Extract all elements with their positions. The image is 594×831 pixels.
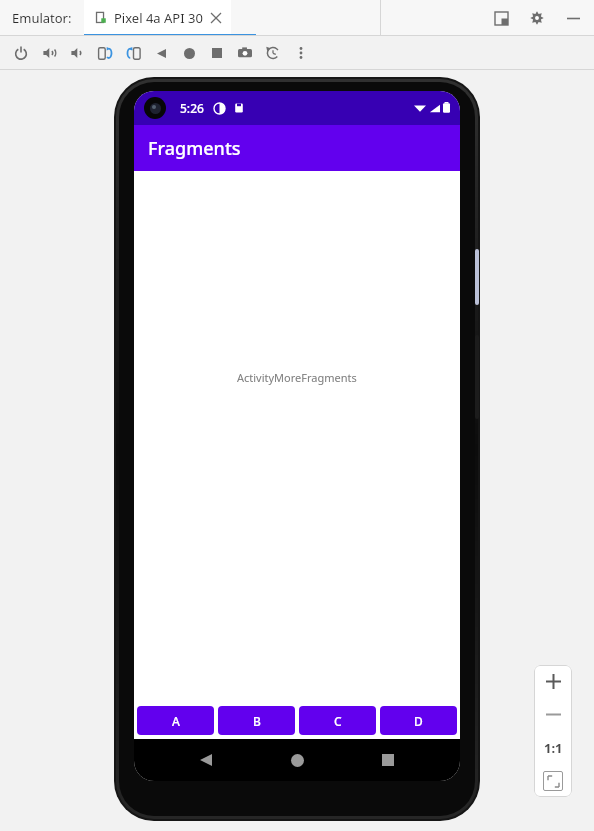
button[interactable]: D xyxy=(380,706,457,735)
button[interactable]: Screenshot xyxy=(232,40,258,66)
button[interactable]: Rotate right xyxy=(120,40,146,66)
staticText: A xyxy=(172,713,180,729)
button[interactable]: Home xyxy=(278,741,316,779)
staticText: D xyxy=(414,713,423,729)
staticText: Emulator: xyxy=(12,9,72,27)
button[interactable]: Power xyxy=(8,40,34,66)
other: Power button xyxy=(475,249,479,305)
button[interactable]: A xyxy=(137,706,214,735)
staticText: C xyxy=(334,713,342,729)
button[interactable]: Minimize xyxy=(562,7,584,29)
button[interactable]: More xyxy=(288,40,314,66)
button[interactable]: Volume down xyxy=(64,40,90,66)
button[interactable]: History xyxy=(260,40,286,66)
staticText: 1:1 xyxy=(544,739,563,757)
button[interactable]: B xyxy=(218,706,295,735)
button[interactable]: Zoom in xyxy=(534,665,572,698)
button[interactable]: Zoom out xyxy=(534,698,572,731)
button[interactable]: Back xyxy=(148,40,174,66)
staticText: Pixel 4a API 30 xyxy=(114,9,203,27)
button[interactable]: Recent apps xyxy=(369,741,407,779)
button[interactable]: C xyxy=(299,706,376,735)
button[interactable]: Home xyxy=(176,40,202,66)
staticText: 5:26 xyxy=(180,100,204,116)
button[interactable]: Overview xyxy=(204,40,230,66)
staticText: B xyxy=(253,713,261,729)
staticText: Fragments xyxy=(148,136,241,161)
button[interactable]: 1:1 xyxy=(534,731,572,764)
staticText: ActivityMoreFragments xyxy=(237,370,357,385)
button[interactable]: Rotate left xyxy=(92,40,118,66)
button[interactable]: Pixel 4a API 30 xyxy=(84,0,231,36)
button[interactable]: Back xyxy=(187,741,225,779)
button[interactable]: Split panel xyxy=(490,7,512,29)
button[interactable]: Fit to screen xyxy=(534,764,572,797)
button[interactable]: Volume up xyxy=(36,40,62,66)
button[interactable]: Settings xyxy=(526,7,548,29)
